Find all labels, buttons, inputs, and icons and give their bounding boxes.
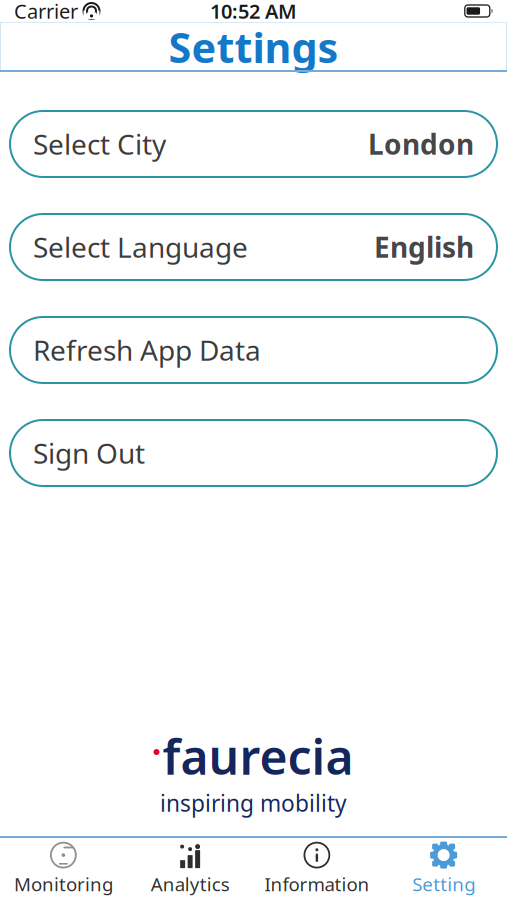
staticText: Carrier [14, 0, 78, 24]
staticText: faurecia [162, 724, 353, 788]
button[interactable]: Select City [10, 111, 497, 177]
staticText: 10:52 AM [210, 0, 297, 24]
staticText: Refresh App Data [33, 331, 261, 369]
staticText: Select Language [33, 228, 248, 266]
button[interactable]: Information [253, 839, 380, 899]
staticText: Monitoring [14, 872, 113, 896]
button[interactable]: Monitoring [0, 839, 127, 899]
staticText: English [374, 228, 474, 266]
button[interactable]: Setting [380, 839, 507, 899]
staticText: Sign Out [33, 434, 145, 472]
button[interactable]: Analytics [127, 839, 254, 899]
staticText: inspiring mobility [160, 788, 347, 818]
button[interactable]: Sign Out [10, 420, 497, 486]
staticText: Analytics [151, 872, 230, 896]
button[interactable]: Select Language [10, 214, 497, 280]
button[interactable]: Refresh App Data [10, 317, 497, 383]
staticText: Setting [412, 872, 475, 896]
staticText: London [368, 125, 474, 163]
staticText: Select City [33, 125, 166, 163]
staticText: Settings [168, 20, 338, 74]
staticText: Information [264, 872, 369, 896]
